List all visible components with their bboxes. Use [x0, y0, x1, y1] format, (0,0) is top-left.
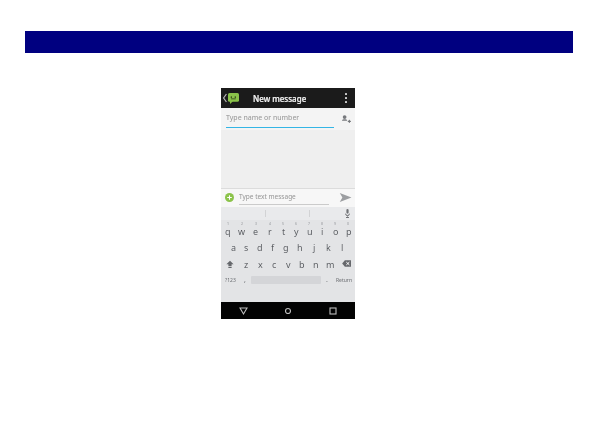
staticText: c	[272, 258, 277, 270]
staticText: New message	[253, 93, 307, 104]
staticText: ,	[244, 275, 246, 285]
button[interactable]: 8	[316, 220, 329, 238]
button[interactable]: 2	[235, 220, 249, 238]
button[interactable]: m	[323, 255, 337, 272]
staticText: 7	[308, 221, 311, 226]
button[interactable]: 4	[263, 220, 277, 238]
staticText: 4	[269, 221, 272, 226]
button[interactable]: Return	[333, 272, 355, 288]
button[interactable]: k	[321, 238, 335, 255]
button[interactable]: b	[295, 255, 309, 272]
staticText: Type text message	[239, 192, 296, 201]
button[interactable]: 3	[249, 220, 263, 238]
staticText: o	[333, 225, 339, 237]
staticText: 3	[255, 221, 258, 226]
button[interactable]: Navigate up	[221, 88, 251, 108]
button[interactable]: ?123	[221, 272, 239, 288]
staticText: x	[258, 258, 263, 270]
button[interactable]: Send message	[335, 188, 355, 207]
staticText: j	[313, 241, 316, 253]
button[interactable]: Delete	[337, 255, 355, 272]
staticText: 2	[241, 221, 244, 226]
staticText: h	[297, 241, 303, 253]
button[interactable]: Type name or number	[226, 110, 334, 128]
button[interactable]: g	[279, 238, 293, 255]
button[interactable]: v	[281, 255, 295, 272]
staticText: y	[294, 225, 299, 237]
staticText: 9	[334, 221, 337, 226]
staticText: i	[321, 225, 324, 237]
staticText: q	[225, 225, 231, 237]
button[interactable]: Add recipient from contacts	[335, 108, 355, 130]
staticText: d	[257, 241, 263, 253]
staticText: r	[268, 225, 272, 237]
button[interactable]: Shift	[221, 255, 239, 272]
button[interactable]: x	[253, 255, 267, 272]
staticText: l	[341, 241, 344, 253]
staticText: p	[346, 225, 352, 237]
staticText: s	[244, 241, 249, 253]
button[interactable]: s	[240, 238, 253, 255]
staticText: f	[271, 241, 275, 253]
button[interactable]: c	[267, 255, 281, 272]
button[interactable]: d	[253, 238, 266, 255]
button[interactable]: Back	[221, 302, 265, 319]
button[interactable]: h	[293, 238, 307, 255]
button[interactable]: Add attachment	[221, 189, 238, 206]
staticText: Type name or number	[226, 113, 300, 123]
staticText: ?123	[225, 277, 236, 284]
button[interactable]: n	[309, 255, 323, 272]
button[interactable]: ,	[239, 272, 251, 288]
button[interactable]: 1	[221, 220, 235, 238]
staticText: a	[231, 241, 237, 253]
staticText: t	[282, 225, 286, 237]
button[interactable]: Voice input	[339, 207, 355, 220]
staticText: Return	[336, 277, 352, 284]
button[interactable]: .	[321, 272, 333, 288]
staticText: 0	[347, 221, 350, 226]
button[interactable]: a	[227, 238, 240, 255]
button[interactable]: Home	[265, 302, 310, 319]
staticText: 6	[295, 221, 298, 226]
staticText: .	[326, 275, 328, 285]
button[interactable]: z	[239, 255, 253, 272]
button[interactable]: l	[335, 238, 349, 255]
button[interactable]: Type text message	[239, 190, 329, 205]
staticText: 8	[321, 221, 324, 226]
staticText: b	[299, 258, 305, 270]
staticText: e	[253, 225, 259, 237]
button[interactable]: 7	[303, 220, 316, 238]
staticText: k	[326, 241, 331, 253]
button[interactable]: Recent apps	[310, 302, 355, 319]
button[interactable]: j	[307, 238, 321, 255]
staticText: n	[313, 258, 319, 270]
staticText: v	[286, 258, 291, 270]
button[interactable]: More options	[337, 88, 355, 108]
staticText: w	[238, 225, 246, 237]
staticText: m	[326, 258, 335, 270]
staticText: u	[307, 225, 313, 237]
staticText: z	[244, 258, 249, 270]
button[interactable]: 5	[277, 220, 290, 238]
button[interactable]: 0	[342, 220, 355, 238]
button[interactable]: f	[266, 238, 279, 255]
staticText: g	[283, 241, 289, 253]
button[interactable]: 6	[290, 220, 303, 238]
button[interactable]: 9	[329, 220, 342, 238]
staticText: 1	[227, 221, 230, 226]
staticText: 5	[282, 221, 285, 226]
